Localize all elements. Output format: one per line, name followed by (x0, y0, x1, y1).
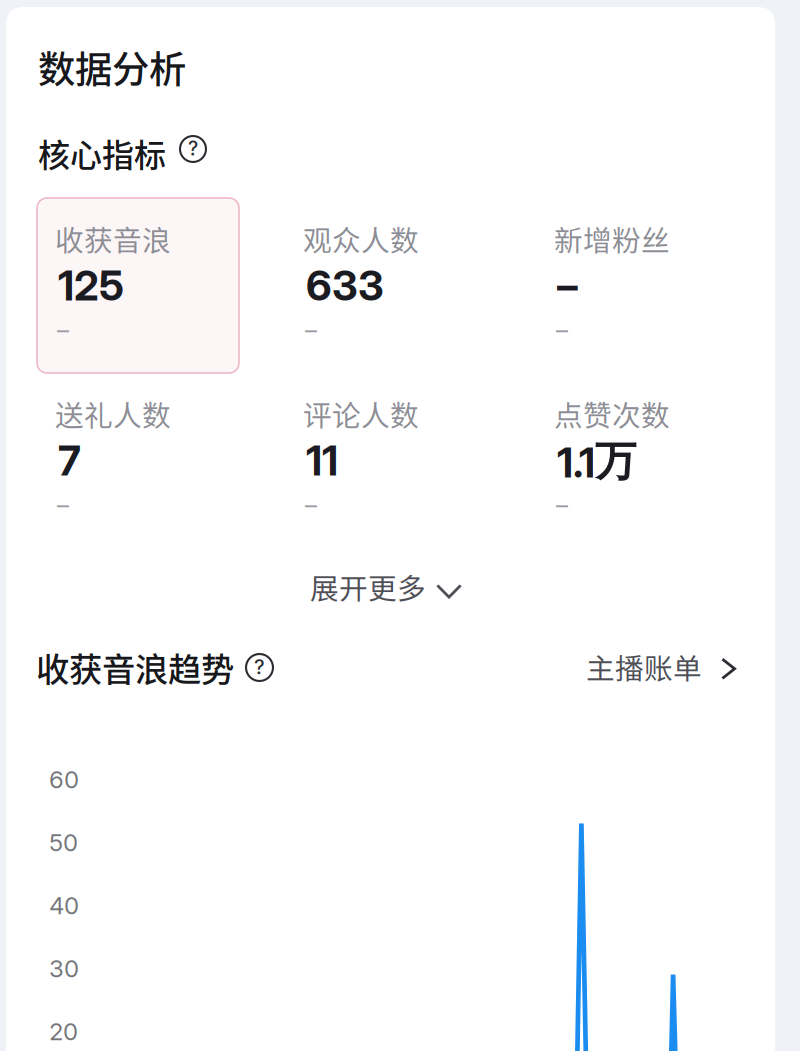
button[interactable]: 主播账单 (586, 646, 800, 687)
staticText: 展开更多 (310, 566, 426, 607)
button[interactable]: 展开更多 (310, 566, 510, 607)
staticText: 主播账单 (586, 646, 702, 687)
staticText: – (556, 490, 568, 519)
staticText: 数据分析 (38, 40, 186, 94)
staticText: 11 (306, 435, 338, 485)
staticText: 633 (306, 260, 384, 310)
button[interactable]: 收获音浪趋势说明 (246, 654, 273, 681)
staticText: – (57, 490, 69, 519)
staticText: 点赞次数 (554, 393, 670, 434)
staticText: 收获音浪 (55, 218, 171, 259)
staticText: 新增粉丝 (554, 218, 670, 259)
staticText: 60 (49, 765, 79, 794)
staticText: 核心指标 (38, 130, 166, 176)
staticText: 125 (58, 260, 124, 310)
staticText: – (57, 315, 69, 344)
staticText: – (557, 260, 578, 310)
staticText: 40 (49, 891, 79, 920)
staticText: ? (254, 655, 265, 679)
staticText: 50 (49, 828, 78, 857)
staticText: 观众人数 (303, 218, 419, 259)
staticText: – (305, 315, 317, 344)
staticText: 1.1万 (557, 435, 636, 488)
staticText: 评论人数 (303, 393, 419, 434)
staticText: – (305, 490, 317, 519)
staticText: 送礼人数 (55, 393, 171, 434)
staticText: ? (188, 137, 198, 160)
staticText: 20 (49, 1017, 78, 1046)
staticText: 7 (58, 435, 81, 485)
staticText: 收获音浪趋势 (36, 643, 234, 691)
button[interactable]: 核心指标说明 (180, 136, 206, 162)
staticText: – (556, 315, 568, 344)
staticText: 30 (49, 954, 79, 983)
